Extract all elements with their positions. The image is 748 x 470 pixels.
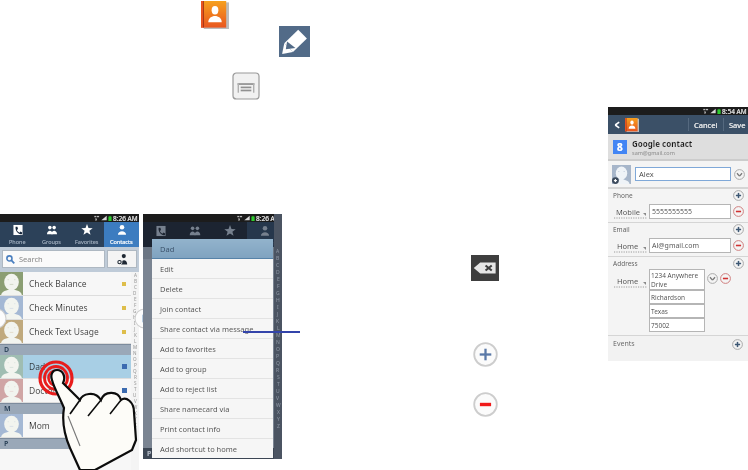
staticText: Cancel [694,120,718,130]
button[interactable]: Next [134,308,155,329]
staticText: Join contact [160,304,202,314]
staticText: Doctor [29,385,122,397]
staticText: M [133,344,138,350]
button[interactable]: Check Text Usage [0,320,131,343]
other: Edit [279,26,310,57]
button[interactable]: Expand [707,273,718,284]
staticText: Address [613,259,638,268]
staticText: Add to group [160,364,207,374]
staticText: Z [134,422,137,428]
staticText: J [134,326,136,332]
button[interactable]: 75002 [649,318,705,332]
staticText: V [276,395,280,402]
button[interactable]: Add field [733,224,744,235]
button[interactable]: Mom [0,414,131,437]
button[interactable]: Add to favorites [152,339,273,358]
button[interactable]: Remove field [733,240,744,251]
staticText: X [134,410,137,416]
button[interactable]: Favorites [69,222,104,247]
button[interactable]: 5555555555 [649,204,731,219]
button[interactable]: Favorites [212,222,247,247]
button[interactable]: Richardson [649,290,705,304]
button[interactable]: Remove field [733,206,744,217]
staticText: B [134,278,137,284]
staticText: Share namecard via [160,404,230,414]
staticText: Phone [9,238,26,245]
button[interactable]: Home [613,238,647,253]
button[interactable]: Contacts [104,222,139,247]
staticText: H [276,297,280,304]
button[interactable]: Al@gmail.com [649,238,731,253]
button[interactable]: Add shortcut to home [152,439,273,458]
button[interactable]: Add photo [612,165,631,184]
other: Contacts app [625,118,639,132]
staticText: N [133,350,137,356]
other: Contacts app [201,1,229,29]
staticText: W [133,404,138,410]
staticText: Favorites [75,238,99,245]
button[interactable]: Check Balance [0,272,131,295]
button[interactable]: Phone [0,222,34,247]
button[interactable]: Print contact info [152,419,273,438]
button[interactable]: Save [724,120,748,130]
button[interactable]: Add field [733,258,744,269]
button[interactable]: Add contact [107,250,137,268]
staticText: U [133,392,137,398]
button[interactable]: 1234 Anywhere Drive [649,269,705,290]
button[interactable]: Alex [635,167,731,181]
button[interactable]: Add to group [152,359,273,378]
button[interactable]: Delete [152,279,273,298]
button[interactable]: Share namecard via [152,399,273,418]
button[interactable]: Groups [34,222,69,247]
button[interactable]: Home [613,273,647,288]
button[interactable]: Check Minutes [0,296,131,319]
staticText: I [134,320,136,326]
staticText: 5555555555 [652,207,693,217]
button[interactable]: Remove field [720,273,731,284]
button[interactable]: Dad [0,355,131,378]
button[interactable]: Search [2,250,105,268]
staticText: 8:26 AM [256,214,281,222]
button[interactable]: Groups [177,222,212,247]
staticText: K [134,332,137,338]
button[interactable]: Texas [649,304,705,318]
button[interactable]: Expand [734,169,745,180]
staticText: Phone [613,191,633,200]
button[interactable]: Back [612,120,622,130]
button[interactable]: Edit [152,259,273,278]
staticText: K [276,318,280,325]
button[interactable]: Phone [143,222,177,247]
button[interactable]: Add field [732,339,743,350]
staticText: 8:26 AM [113,214,138,222]
staticText: P [4,439,9,449]
staticText: W [276,402,281,409]
staticText: Alex [639,169,654,179]
staticText: S [277,374,280,381]
staticText: Dad [160,244,175,254]
staticText: Groups [42,238,61,245]
button[interactable]: Contacts [247,222,282,247]
button[interactable]: Share contact via message [152,319,273,338]
staticText: F [277,283,280,290]
staticText: 1234 Anywhere Drive [651,271,703,289]
staticText: Google contact [632,138,693,149]
staticText: R [276,367,280,374]
button[interactable]: Add field [733,190,744,201]
button[interactable]: Previous [0,308,7,329]
staticText: P [276,353,280,360]
button[interactable]: Doctor [0,379,131,402]
button[interactable]: Mobile [613,204,647,219]
staticText: Richardson [651,293,686,302]
button[interactable]: Add to reject list [152,379,273,398]
staticText: 8 [617,140,623,154]
staticText: Search [19,254,43,264]
staticText: E [134,296,137,302]
button[interactable]: Join contact [152,299,273,318]
staticText: D [4,345,10,355]
button[interactable]: 8 [613,134,748,159]
button[interactable]: Cancel [689,120,723,130]
staticText: Check Minutes [29,302,122,314]
staticText: Contacts [253,239,276,246]
